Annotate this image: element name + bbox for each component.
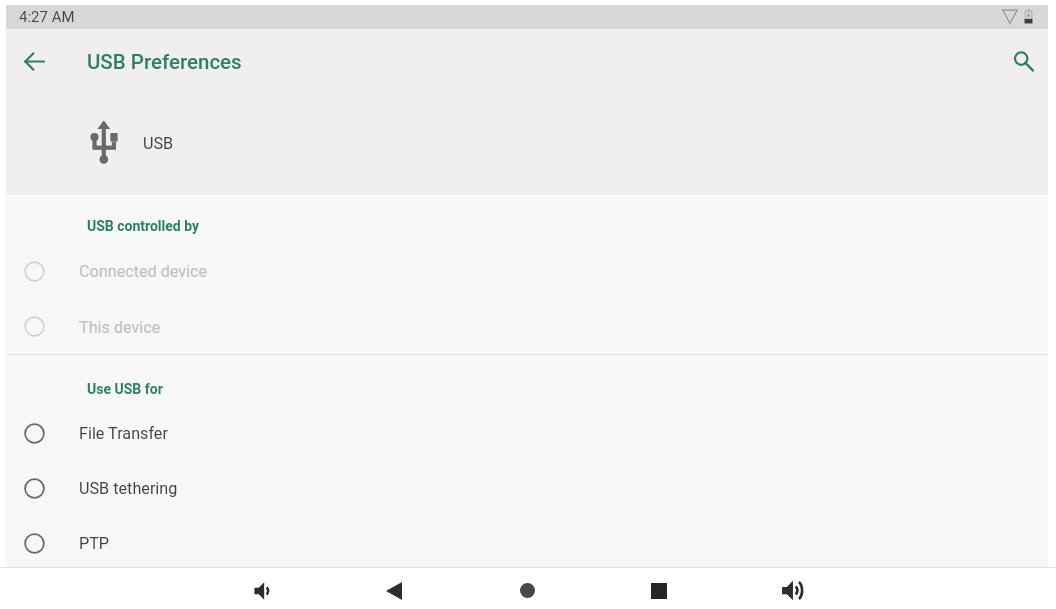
staticText: PTP [79, 534, 110, 553]
staticText: USB tethering [79, 479, 178, 498]
button[interactable]: Volume up [766, 572, 816, 609]
staticText: Use USB for [87, 381, 163, 397]
staticText: USB controlled by [87, 218, 200, 234]
staticText: This device [79, 318, 161, 337]
button[interactable]: PTP [6, 516, 1048, 571]
button[interactable]: Recent apps [634, 572, 684, 609]
button[interactable]: Search [1001, 39, 1046, 84]
button[interactable]: Volume down [237, 572, 287, 609]
button[interactable]: USB tethering [6, 461, 1048, 516]
button[interactable]: File Transfer [6, 406, 1048, 461]
staticText: USB Preferences [87, 50, 242, 74]
button[interactable]: Back [369, 572, 419, 609]
button[interactable]: Connected device [6, 244, 1048, 299]
staticText: USB [143, 134, 174, 153]
button[interactable]: Home [502, 572, 552, 609]
button[interactable]: USB [6, 106, 1048, 180]
staticText: File Transfer [79, 424, 168, 443]
staticText: 4:27 AM [19, 8, 75, 26]
staticText: Connected device [79, 262, 208, 281]
button[interactable]: This device [6, 299, 1048, 354]
button[interactable]: Navigate up [12, 39, 57, 84]
